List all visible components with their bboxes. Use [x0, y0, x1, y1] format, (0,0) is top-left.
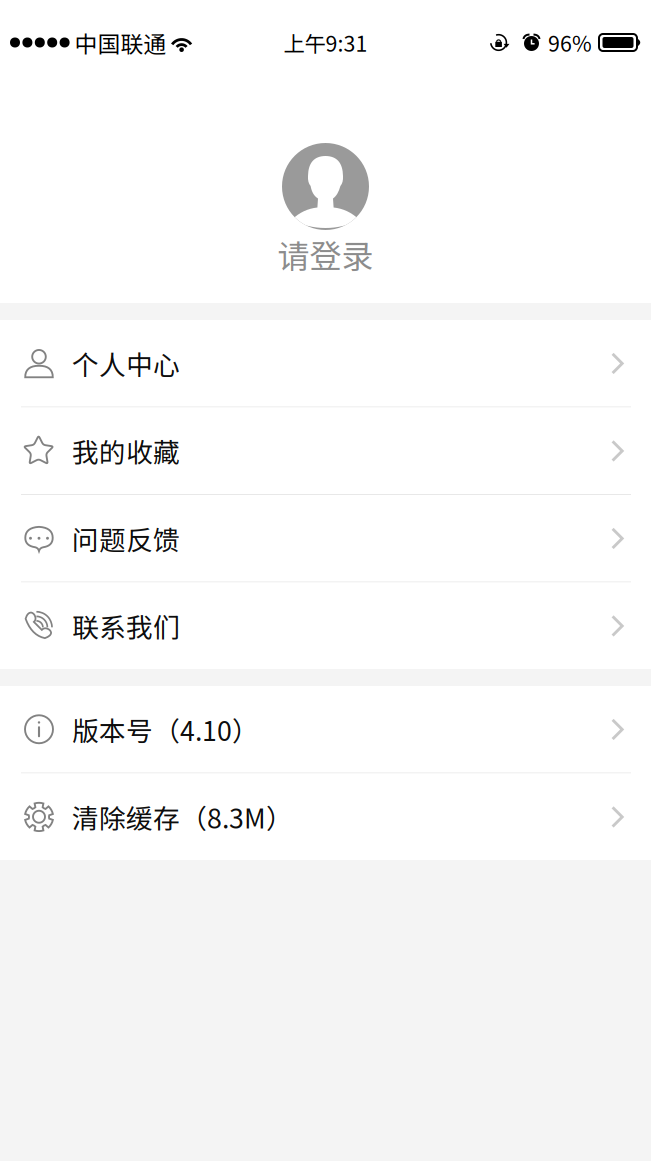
button[interactable]: 清除缓存（8.3M） — [0, 773, 651, 860]
button[interactable]: 我的收藏 — [0, 407, 651, 494]
staticText: 版本号（4.10） — [72, 710, 259, 748]
button[interactable]: 个人中心 — [0, 320, 651, 406]
staticText: 中国联通 — [75, 26, 167, 59]
staticText: 我的收藏 — [72, 431, 180, 470]
staticText: 请登录 — [277, 231, 373, 277]
staticText: 问题反馈 — [72, 519, 180, 557]
button[interactable]: 版本号（4.10） — [0, 686, 651, 772]
staticText: 个人中心 — [72, 344, 180, 382]
staticText: 上午9:31 — [283, 27, 367, 58]
staticText: 清除缓存（8.3M） — [72, 797, 293, 836]
staticText: 联系我们 — [72, 606, 180, 645]
staticText: 96% — [548, 27, 592, 58]
button[interactable]: 问题反馈 — [0, 495, 651, 581]
button[interactable]: 联系我们 — [0, 582, 651, 669]
